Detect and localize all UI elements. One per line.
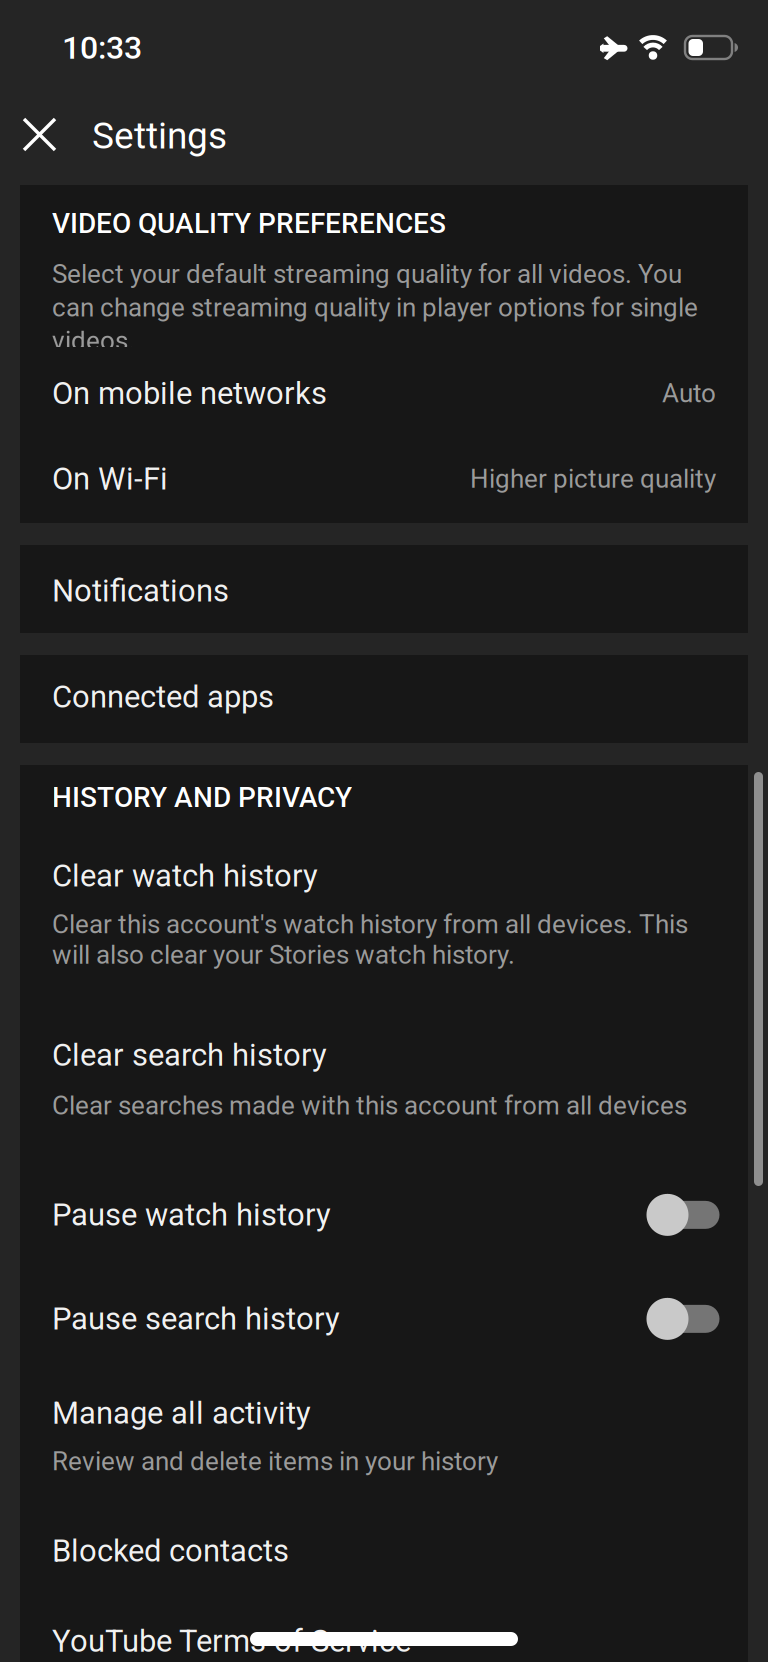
staticText: Clear this account's watch history from … — [52, 909, 688, 970]
staticText: Clear searches made with this account fr… — [52, 1090, 687, 1121]
button[interactable]: On mobile networks — [20, 351, 748, 436]
button[interactable]: Clear watch history — [20, 814, 748, 970]
staticText: Select your default streaming quality fo… — [52, 259, 698, 356]
staticText: Pause search history — [52, 1301, 340, 1337]
button[interactable]: On Wi-Fi — [20, 436, 748, 522]
staticText: Review and delete items in your history — [52, 1446, 498, 1477]
staticText: HISTORY AND PRIVACY — [52, 781, 352, 814]
staticText: YouTube Terms of Service — [52, 1623, 411, 1659]
staticText: Notifications — [52, 573, 229, 609]
button[interactable]: Close — [12, 107, 67, 162]
staticText: VIDEO QUALITY PREFERENCES — [52, 207, 446, 240]
staticText: Settings — [92, 114, 227, 157]
button[interactable]: Clear search history — [20, 970, 748, 1121]
staticText: Connected apps — [52, 679, 274, 715]
staticText: On mobile networks — [52, 375, 327, 411]
button[interactable]: Pause search history — [20, 1269, 748, 1369]
staticText: Manage all activity — [52, 1395, 311, 1431]
staticText: Clear search history — [52, 1037, 327, 1073]
button[interactable]: YouTube Terms of Service — [20, 1569, 748, 1659]
staticText: 10:33 — [62, 29, 142, 66]
staticText: Auto — [662, 378, 716, 409]
button[interactable]: Blocked contacts — [20, 1477, 748, 1569]
staticText: Blocked contacts — [52, 1533, 289, 1569]
button[interactable]: Pause watch history — [20, 1165, 748, 1265]
button[interactable]: Connected apps — [20, 655, 748, 743]
staticText: Clear watch history — [52, 858, 318, 894]
staticText: Higher picture quality — [470, 464, 716, 494]
staticText: On Wi-Fi — [52, 461, 168, 497]
button[interactable]: Notifications — [20, 545, 748, 633]
staticText: Pause watch history — [52, 1197, 331, 1233]
button[interactable]: Manage all activity — [20, 1369, 748, 1477]
